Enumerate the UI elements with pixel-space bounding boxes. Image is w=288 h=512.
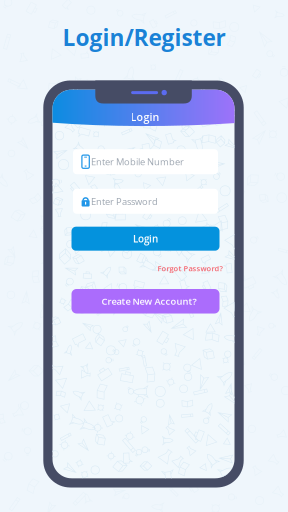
staticText: Forgot Password? xyxy=(157,263,222,273)
staticText: Enter Password xyxy=(91,195,158,208)
staticText: Login xyxy=(130,109,159,124)
button[interactable]: Login xyxy=(71,227,219,251)
staticText: Enter Mobile Number xyxy=(91,155,184,168)
button[interactable]: Create New Account? xyxy=(71,289,219,313)
button[interactable]: Forgot Password? xyxy=(71,263,222,273)
staticText: Login/Register xyxy=(62,22,225,53)
button[interactable]: Enter Mobile Number xyxy=(73,149,218,174)
staticText: Login xyxy=(133,232,158,245)
staticText: Create New Account? xyxy=(101,295,196,308)
button[interactable]: Enter Password xyxy=(73,189,218,214)
